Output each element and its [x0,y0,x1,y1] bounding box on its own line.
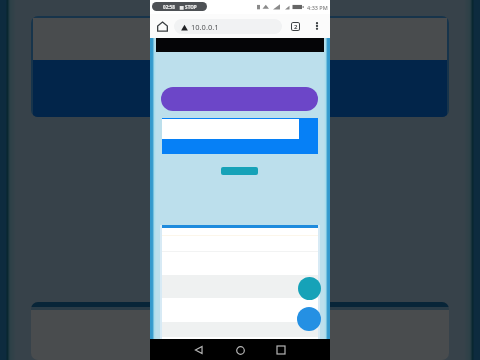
button[interactable] [221,167,258,175]
button[interactable]: Home [152,16,172,36]
button[interactable]: Home [231,341,249,359]
button[interactable] [160,298,320,322]
staticText: 4:33 PM [307,4,328,11]
button[interactable]: Back [190,341,208,359]
button[interactable]: Add [298,277,321,300]
button[interactable]: 10.0.0.1 [174,19,282,34]
staticText: 2 [294,23,298,30]
button[interactable]: More options [308,17,326,35]
button[interactable] [160,322,320,337]
button[interactable]: Tabs [286,17,305,36]
button[interactable] [161,87,318,111]
button[interactable] [160,236,320,251]
button[interactable]: Stop recording [152,2,207,11]
button[interactable] [160,275,320,298]
staticText: 02:58 ■ STOP [163,4,197,10]
button[interactable] [160,228,320,235]
button[interactable]: Edit [297,307,321,331]
staticText: 10.0.0.1 [191,22,219,32]
button[interactable]: Recent apps [272,341,290,359]
button[interactable] [160,252,320,275]
